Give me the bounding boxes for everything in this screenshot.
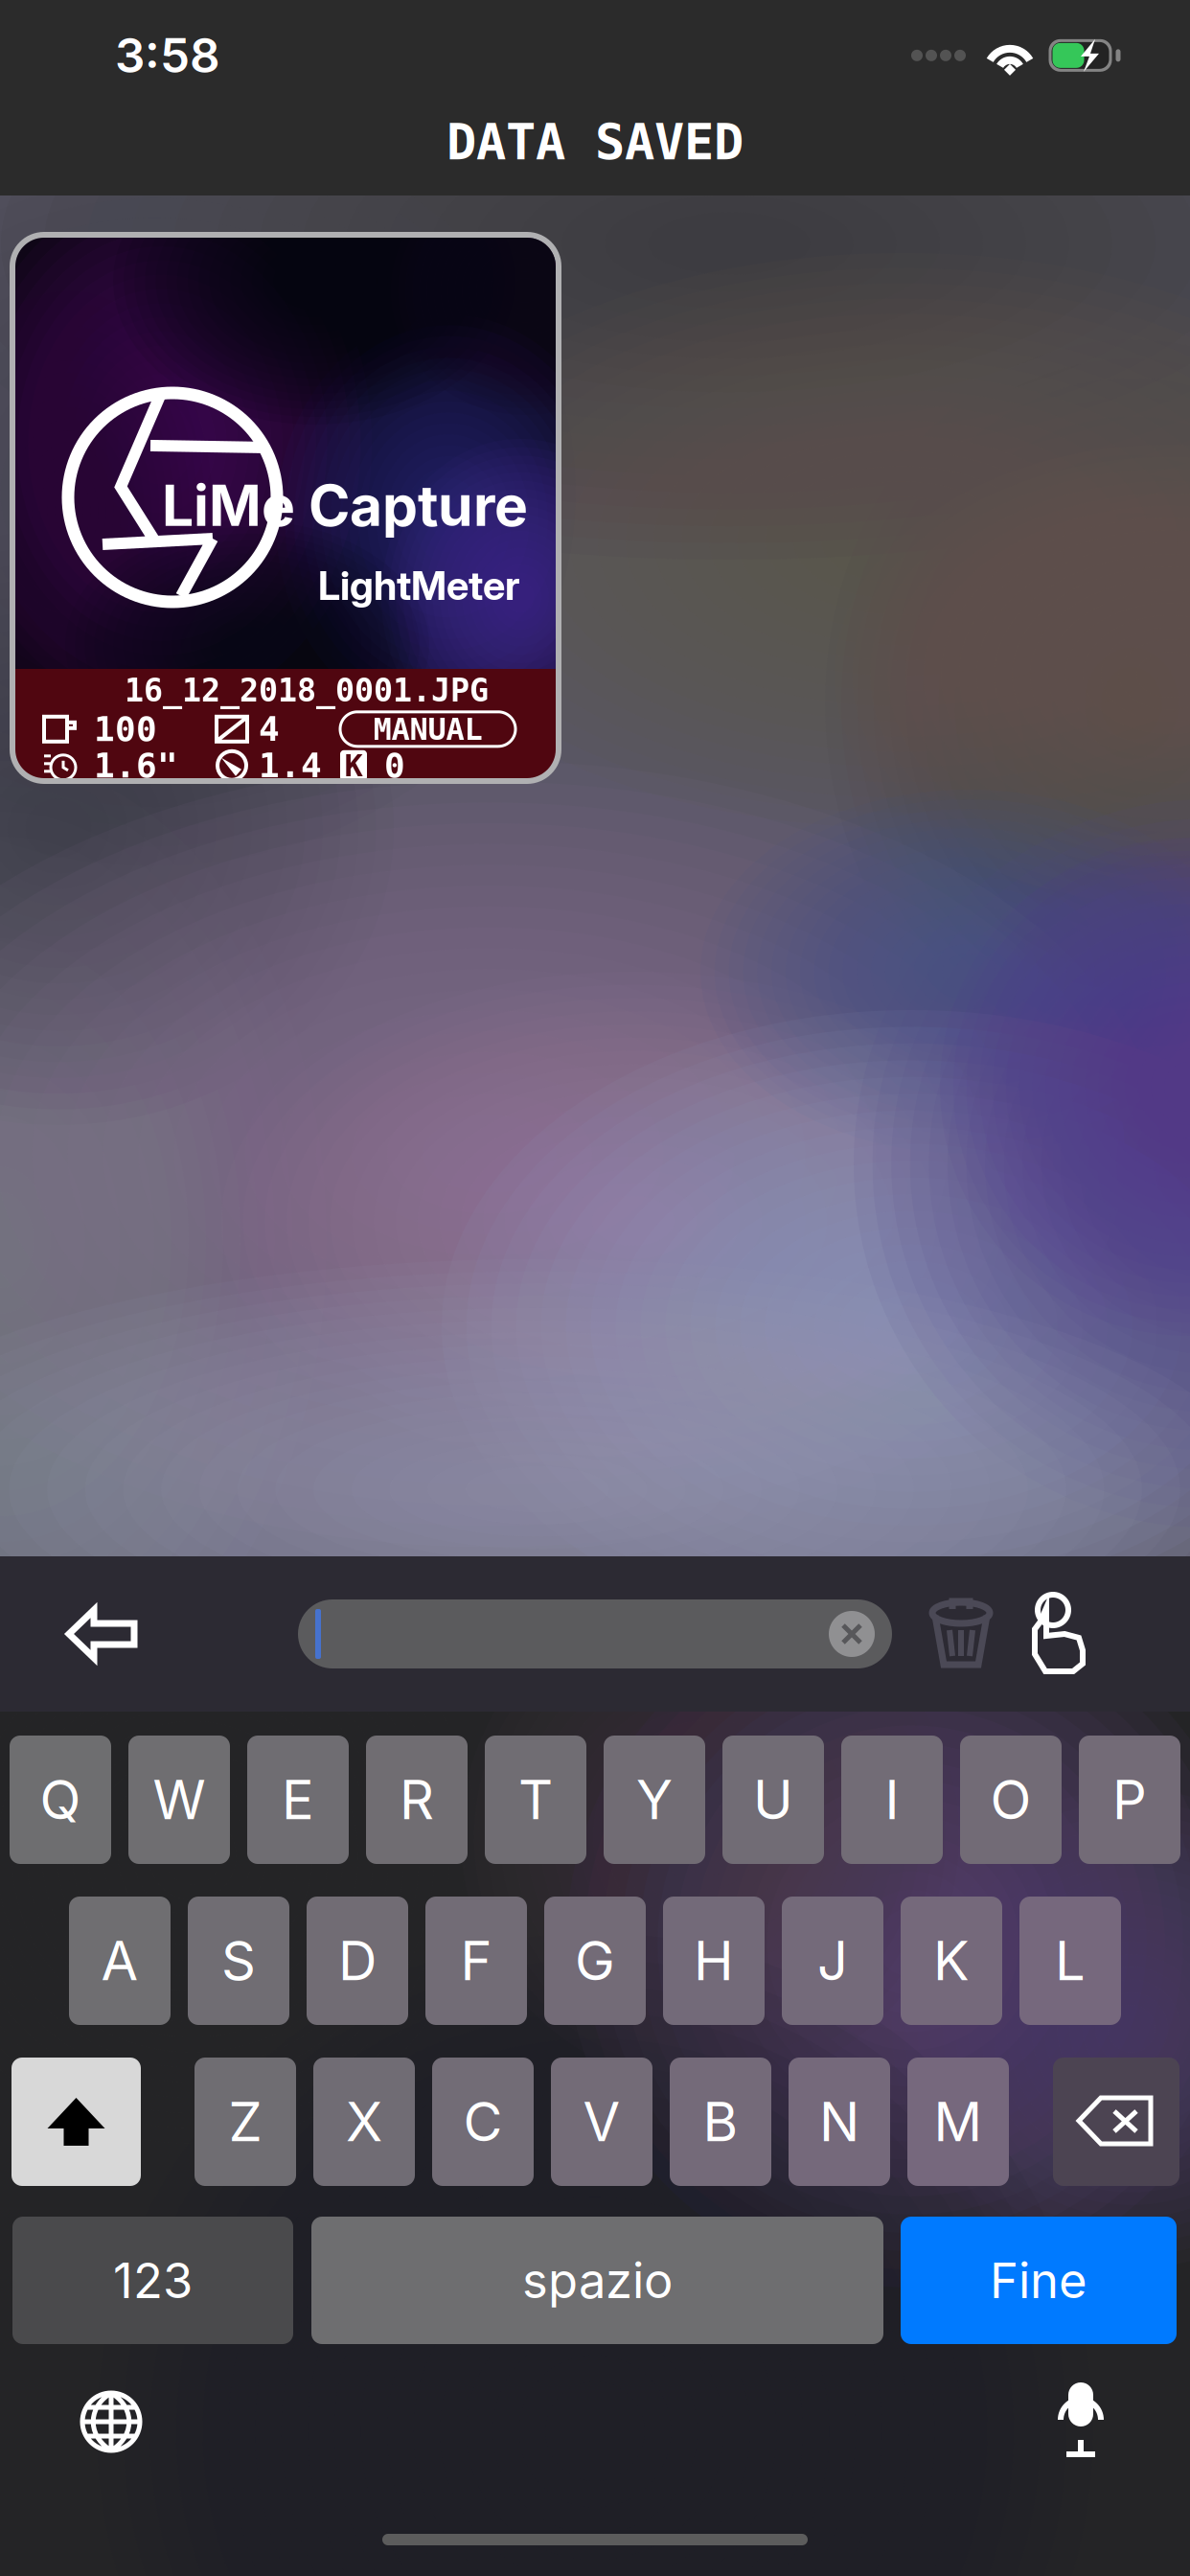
button[interactable]: W <box>128 1736 230 1864</box>
button[interactable]: Shift <box>11 2058 141 2186</box>
staticText: 123 <box>113 2251 193 2310</box>
staticText: 100 <box>94 709 157 749</box>
staticText: DATA SAVED <box>446 113 744 171</box>
staticText: 4 <box>259 709 280 749</box>
staticText: U <box>753 1767 793 1832</box>
button[interactable]: J <box>782 1897 883 2025</box>
staticText: 1.6" <box>94 745 178 786</box>
button[interactable]: Fine <box>901 2217 1177 2344</box>
staticText: M <box>934 2089 983 2154</box>
button[interactable]: Back <box>38 1567 165 1701</box>
button[interactable]: A <box>69 1897 171 2025</box>
staticText: X <box>346 2089 382 2154</box>
button[interactable]: L <box>1019 1897 1121 2025</box>
staticText: D <box>338 1928 377 1993</box>
staticText: 1.4 <box>259 745 322 786</box>
staticText: I <box>885 1767 899 1832</box>
button[interactable]: Pick from photos <box>1008 1562 1104 1706</box>
button[interactable]: Clear text <box>829 1611 875 1657</box>
button[interactable]: E <box>247 1736 349 1864</box>
button[interactable]: S <box>188 1897 289 2025</box>
staticText: 16_12_2018_0001.JPG <box>125 672 489 709</box>
button[interactable]: K <box>901 1897 1002 2025</box>
staticText: L <box>1055 1928 1086 1993</box>
staticText: E <box>282 1767 314 1832</box>
button[interactable]: N <box>789 2058 890 2186</box>
staticText: A <box>101 1928 138 1993</box>
staticText: K <box>933 1928 970 1993</box>
button[interactable]: Next keyboard <box>77 2387 146 2456</box>
staticText: C <box>463 2089 503 2154</box>
staticText: J <box>817 1928 848 1993</box>
button[interactable]: O <box>960 1736 1062 1864</box>
button[interactable]: X <box>313 2058 415 2186</box>
button[interactable]: Q <box>10 1736 111 1864</box>
button[interactable]: spazio <box>311 2217 883 2344</box>
button[interactable]: T <box>485 1736 586 1864</box>
staticText: O <box>990 1767 1031 1832</box>
button[interactable]: G <box>544 1897 646 2025</box>
button[interactable]: Y <box>604 1736 705 1864</box>
staticText: H <box>694 1928 734 1993</box>
button[interactable]: R <box>366 1736 468 1864</box>
staticText: Z <box>229 2089 262 2154</box>
staticText: R <box>400 1767 434 1832</box>
staticText: spazio <box>522 2251 673 2310</box>
staticText: Fine <box>990 2251 1087 2310</box>
staticText: 3:58 <box>115 27 220 84</box>
staticText: W <box>153 1767 206 1832</box>
staticText: F <box>460 1928 492 1993</box>
staticText: V <box>583 2089 620 2154</box>
button[interactable]: H <box>663 1897 765 2025</box>
button[interactable]: D <box>307 1897 408 2025</box>
button[interactable]: Delete <box>910 1562 1012 1706</box>
staticText: P <box>1112 1767 1147 1832</box>
button[interactable]: M <box>907 2058 1009 2186</box>
button[interactable]: V <box>551 2058 652 2186</box>
staticText: LiMe Capture <box>162 471 528 540</box>
button[interactable]: P <box>1079 1736 1180 1864</box>
button[interactable]: Delete <box>1053 2058 1179 2186</box>
button[interactable]: B <box>670 2058 771 2186</box>
staticText: G <box>575 1928 615 1993</box>
button[interactable]: F <box>425 1897 527 2025</box>
staticText: S <box>221 1928 256 1993</box>
button[interactable]: C <box>432 2058 534 2186</box>
button[interactable]: U <box>722 1736 824 1864</box>
button[interactable]: Z <box>195 2058 296 2186</box>
staticText: T <box>518 1767 553 1832</box>
button[interactable]: I <box>841 1736 943 1864</box>
staticText: 0 <box>384 745 405 786</box>
staticText: Q <box>40 1767 81 1832</box>
staticText: N <box>819 2089 859 2154</box>
staticText: B <box>703 2089 738 2154</box>
staticText: Y <box>636 1767 673 1832</box>
staticText: K <box>344 748 363 783</box>
button[interactable]: Dictate <box>1054 2382 1108 2461</box>
staticText: LightMeter <box>318 562 520 609</box>
staticText: MANUAL <box>373 711 482 747</box>
button[interactable]: 123 <box>12 2217 293 2344</box>
